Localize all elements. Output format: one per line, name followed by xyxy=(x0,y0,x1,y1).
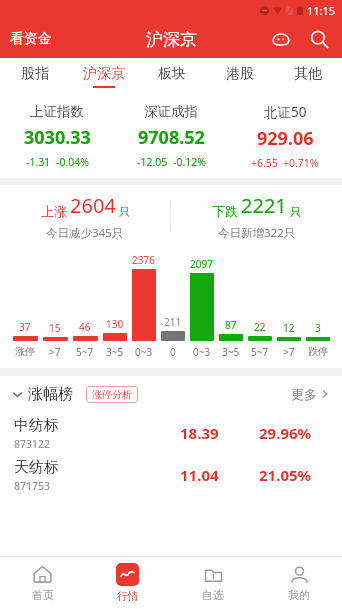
staticText: 更多 xyxy=(291,386,317,402)
staticText: -1.31 xyxy=(26,155,51,169)
button[interactable]: 自选 xyxy=(170,557,256,609)
staticText: 2221 xyxy=(241,192,287,219)
button[interactable]: 板块 xyxy=(138,58,206,94)
staticText: >7 xyxy=(49,345,61,359)
button[interactable]: Assistant xyxy=(268,26,294,52)
button[interactable]: 涨幅榜 xyxy=(12,385,73,404)
staticText: 首页 xyxy=(32,588,54,602)
staticText: 下跌 xyxy=(212,203,238,219)
staticText: 2604 xyxy=(70,192,116,219)
button[interactable]: 沪深京 xyxy=(69,58,138,94)
staticText: -0.04% xyxy=(56,155,89,169)
staticText: -0.12% xyxy=(173,155,206,169)
staticText: 37 xyxy=(19,320,31,334)
staticText: 11.04 xyxy=(180,465,219,485)
staticText: 11:15 xyxy=(307,3,336,18)
staticText: 0 xyxy=(170,345,176,359)
staticText: 21.05% xyxy=(259,465,312,485)
staticText: 其他 xyxy=(294,65,322,83)
button[interactable]: 北证50 xyxy=(228,94,342,178)
staticText: 2376 xyxy=(132,253,155,267)
staticText: 3~5 xyxy=(222,345,240,359)
staticText: 46 xyxy=(79,320,91,334)
staticText: 看资金 xyxy=(10,30,52,48)
button[interactable]: 天纺标 xyxy=(0,454,342,496)
staticText: 2097 xyxy=(190,257,213,271)
staticText: 只 xyxy=(290,205,301,219)
staticText: 上涨 xyxy=(41,203,67,219)
staticText: -12.05 xyxy=(137,155,168,169)
staticText: 涨停分析 xyxy=(92,388,132,401)
staticText: 沪深京 xyxy=(146,29,197,50)
staticText: 今日减少345只 xyxy=(46,225,124,241)
staticText: 3030.33 xyxy=(24,125,91,150)
staticText: 涨停 xyxy=(15,345,35,358)
button[interactable]: 我的 xyxy=(256,557,342,609)
staticText: 18.39 xyxy=(180,423,219,443)
staticText: 5~7 xyxy=(251,345,269,359)
button[interactable]: 涨停分析 xyxy=(86,386,138,403)
button[interactable]: 股指 xyxy=(0,58,69,94)
staticText: 0~3 xyxy=(135,345,153,359)
staticText: 港股 xyxy=(226,65,254,83)
staticText: 天纺标 xyxy=(14,458,59,477)
staticText: 9708.52 xyxy=(138,125,205,150)
button[interactable]: 其他 xyxy=(274,58,342,94)
staticText: 沪深京 xyxy=(83,65,125,83)
button[interactable]: 港股 xyxy=(206,58,274,94)
staticText: 5~7 xyxy=(76,345,94,359)
staticText: +0.71% xyxy=(283,156,319,170)
button[interactable]: 首页 xyxy=(0,557,85,609)
staticText: 12 xyxy=(283,321,295,335)
button[interactable]: Search xyxy=(306,26,332,52)
button[interactable]: 看资金 xyxy=(0,24,62,54)
staticText: 涨幅榜 xyxy=(28,385,73,404)
staticText: 211 xyxy=(164,315,182,329)
staticText: 873122 xyxy=(14,437,51,451)
staticText: 自选 xyxy=(202,588,224,602)
staticText: 跌停 xyxy=(308,345,328,358)
button[interactable]: 中纺标 xyxy=(0,412,342,454)
staticText: 中纺标 xyxy=(14,416,59,435)
staticText: 上证指数 xyxy=(30,103,84,120)
staticText: 29.96% xyxy=(259,423,312,443)
staticText: 87 xyxy=(225,318,237,332)
staticText: 3~5 xyxy=(106,345,124,359)
staticText: 22 xyxy=(254,320,266,334)
staticText: 深证成指 xyxy=(144,103,198,120)
staticText: 北证50 xyxy=(264,103,307,121)
staticText: >7 xyxy=(283,345,295,359)
staticText: 行情 xyxy=(117,589,139,603)
staticText: +6.55 xyxy=(251,156,278,170)
staticText: 3 xyxy=(315,321,321,335)
button[interactable]: 下跌 xyxy=(171,185,342,247)
staticText: 今日新增322只 xyxy=(218,225,296,241)
staticText: 0~3 xyxy=(193,345,211,359)
staticText: 130 xyxy=(106,317,124,331)
button[interactable]: 上证指数 xyxy=(0,94,114,178)
staticText: 871753 xyxy=(14,479,51,493)
staticText: 我的 xyxy=(288,588,310,602)
staticText: 929.06 xyxy=(257,126,314,151)
button[interactable]: 上涨 xyxy=(0,185,170,247)
button[interactable]: 行情 xyxy=(85,557,170,609)
staticText: 15 xyxy=(49,321,61,335)
staticText: 只 xyxy=(119,205,130,219)
staticText: 板块 xyxy=(158,65,186,83)
staticText: 股指 xyxy=(21,65,49,83)
button[interactable]: 更多 xyxy=(291,386,330,402)
button[interactable]: 深证成指 xyxy=(114,94,228,178)
